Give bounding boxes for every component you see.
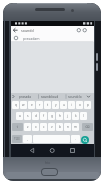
button[interactable]: prasada — [11, 93, 94, 100]
staticText: soundcl — [21, 28, 35, 33]
button[interactable] — [81, 136, 89, 144]
staticText: c — [43, 125, 45, 129]
staticText: j — [67, 114, 68, 118]
staticText: soundclo — [68, 95, 82, 99]
staticText: s — [27, 114, 29, 118]
staticText: p — [87, 103, 89, 107]
staticText: r — [39, 103, 41, 107]
staticText: g — [51, 114, 53, 118]
staticText: i — [71, 103, 72, 107]
button[interactable]: prasadam — [11, 34, 94, 42]
staticText: , — [27, 137, 28, 141]
staticText: h — [59, 114, 61, 118]
staticText: o — [79, 103, 81, 107]
staticText: soundcloud — [41, 95, 59, 99]
staticText: x — [35, 125, 37, 129]
staticText: l — [83, 114, 84, 118]
staticText: ⇧ — [16, 125, 19, 129]
staticText: q — [15, 103, 17, 107]
staticText: e — [31, 103, 33, 107]
staticText: prasadam — [23, 36, 40, 41]
staticText: htc — [45, 160, 51, 165]
staticText: t — [47, 103, 49, 107]
staticText: v — [51, 125, 53, 129]
staticText: k — [75, 114, 77, 118]
staticText: z — [27, 125, 29, 129]
staticText: d — [35, 114, 37, 118]
staticText: ?123 — [14, 137, 20, 141]
staticText: ⌫ — [85, 125, 90, 129]
staticText: f — [43, 114, 45, 118]
button[interactable]: soundcl — [11, 26, 94, 35]
staticText: y — [55, 103, 57, 107]
staticText: m — [74, 125, 77, 129]
staticText: u — [63, 103, 65, 107]
staticText: b — [59, 125, 61, 129]
staticText: n — [67, 125, 69, 129]
staticText: w — [22, 103, 25, 107]
staticText: prasada — [19, 95, 32, 99]
staticText: . — [75, 137, 76, 141]
staticText: a — [19, 114, 21, 118]
